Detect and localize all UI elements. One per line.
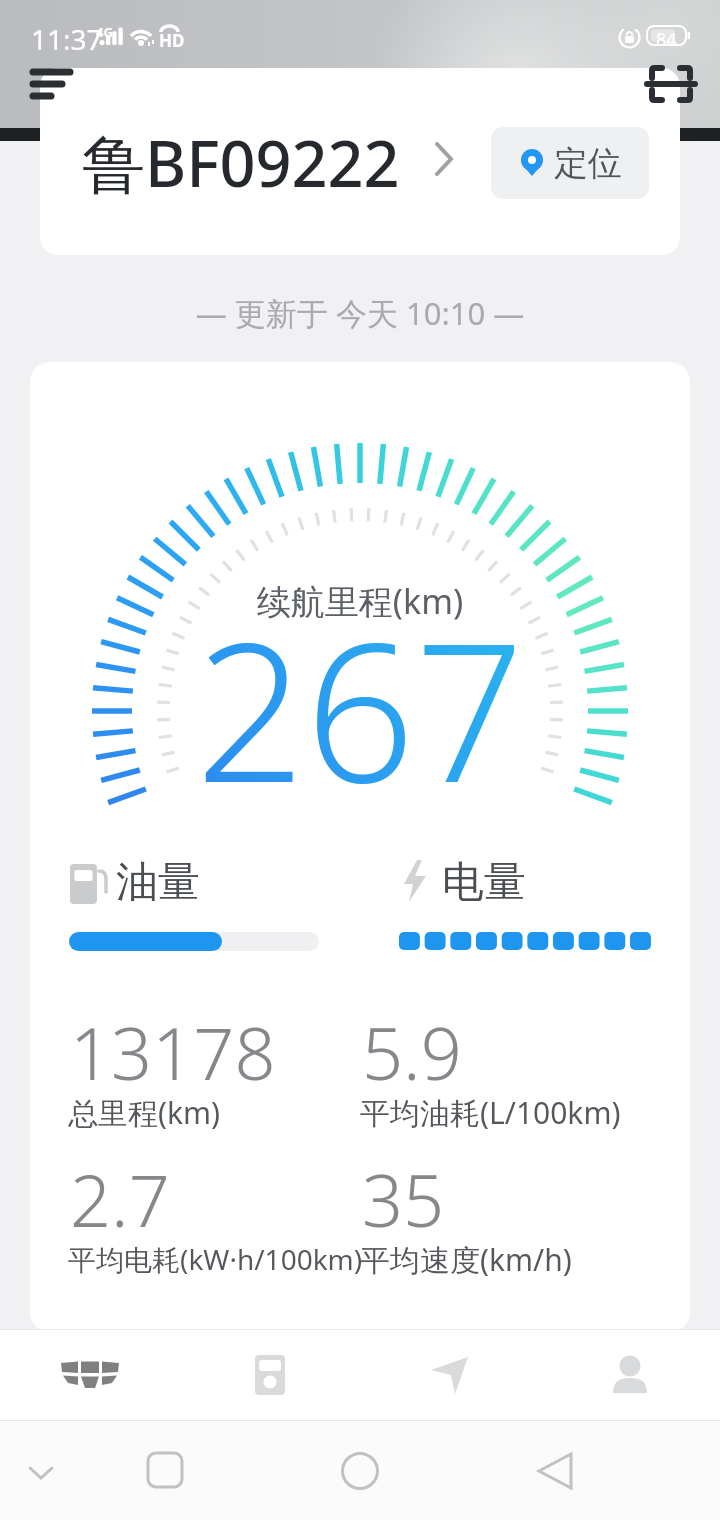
staticText: — 更新于 今天 10:10 — [0,292,720,334]
staticText: 35 [362,1150,445,1248]
button[interactable] [0,1329,180,1420]
button[interactable] [140,1448,190,1498]
staticText: HD [159,29,185,52]
button[interactable] [360,1329,540,1420]
staticText: 油量 [116,856,200,909]
staticText: 11:37 [31,20,103,58]
staticText: 定位 [554,142,622,185]
button[interactable]: 定位 [491,127,649,199]
button[interactable] [530,1449,580,1499]
staticText: 鲁BF09222 [82,120,400,200]
staticText: 4G [96,23,113,41]
staticText: 平均油耗(L/100km) [360,1092,621,1133]
staticText: 总里程(km) [68,1092,221,1133]
staticText: 续航里程(km) [0,578,720,624]
button[interactable] [16,1452,66,1492]
button[interactable] [22,60,82,108]
staticText: 平均速度(km/h) [360,1239,572,1280]
button[interactable] [645,58,697,110]
staticText: 平均电耗(kW·h/100km) [68,1240,363,1278]
button[interactable] [180,1329,360,1420]
staticText: 13178 [70,1003,276,1101]
staticText: 84 [656,27,677,52]
staticText: 267 [0,577,720,839]
staticText: 电量 [442,856,526,909]
button[interactable] [540,1329,720,1420]
staticText: 5.9 [362,1003,462,1101]
staticText: 2.7 [70,1150,170,1248]
button[interactable]: 鲁BF09222 [82,120,456,200]
button[interactable] [335,1446,385,1496]
